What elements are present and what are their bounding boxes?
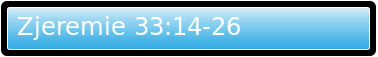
staticText: Zjeremie 33:14-26 xyxy=(17,12,241,41)
button[interactable]: Zjeremie 33:14-26 xyxy=(1,1,376,56)
